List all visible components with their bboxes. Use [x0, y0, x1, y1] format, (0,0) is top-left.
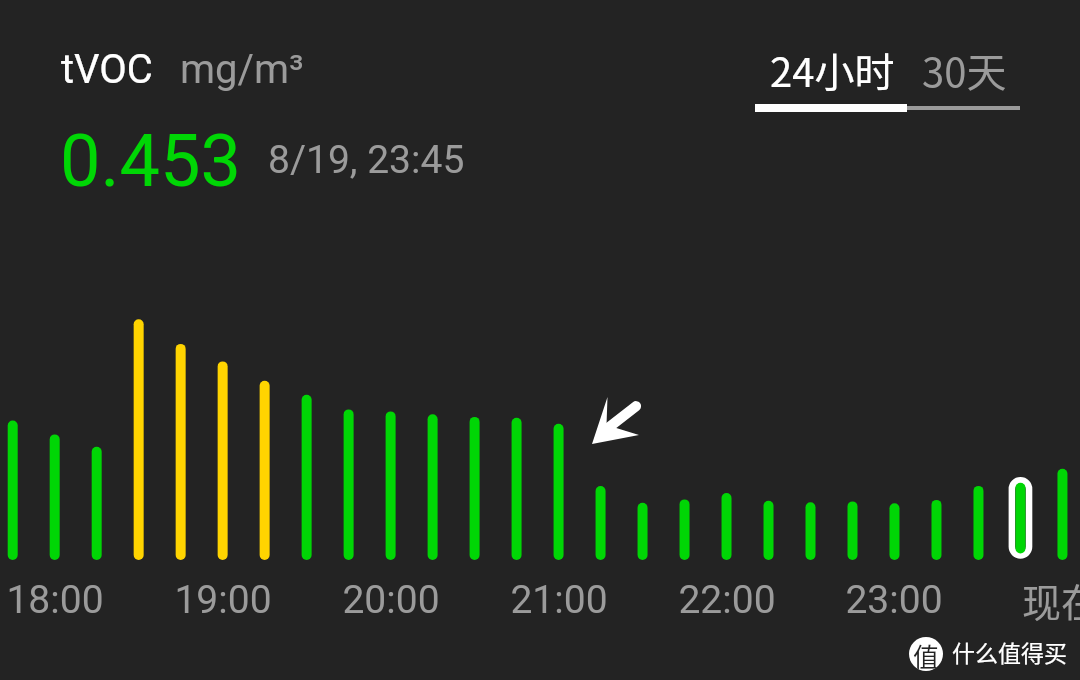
staticText: 22:00 — [678, 577, 776, 623]
staticText: 18:00 — [6, 577, 104, 623]
staticText: 21:00 — [510, 577, 608, 623]
staticText: 0.453 — [60, 119, 241, 203]
button[interactable]: Sample 13 — [496, 300, 538, 560]
button[interactable]: Sample 17 — [664, 300, 706, 560]
button[interactable]: 24小时 — [757, 41, 908, 99]
button[interactable]: Sample 12 — [454, 300, 496, 560]
staticText: 19:00 — [174, 577, 272, 623]
button[interactable]: Sample 15 — [580, 300, 622, 560]
button[interactable]: Sample 6 — [202, 300, 244, 560]
button[interactable]: Sample 2 — [34, 300, 76, 560]
staticText: 现在 — [1022, 572, 1080, 628]
staticText: 8/19, 23:45 — [268, 137, 465, 183]
staticText: tVOC — [61, 46, 153, 93]
button[interactable]: Sample 16 — [622, 300, 664, 560]
button[interactable]: Sample 24 — [957, 300, 999, 560]
button[interactable]: Sample 23 — [915, 300, 957, 560]
button[interactable]: Sample 19 — [748, 300, 790, 560]
staticText: 30天 — [922, 41, 1007, 99]
button[interactable]: Sample 21 — [832, 300, 874, 560]
staticText: 23:00 — [845, 577, 943, 623]
button[interactable]: Sample 8 — [286, 300, 328, 560]
button[interactable]: Sample 11 — [412, 300, 454, 560]
staticText: 20:00 — [342, 577, 440, 623]
staticText: 24小时 — [770, 41, 895, 99]
button[interactable]: Sample 1 — [0, 300, 34, 560]
button[interactable]: Sample 14 — [538, 300, 580, 560]
button[interactable]: Sample 7 — [244, 300, 286, 560]
button[interactable]: Sample 3 — [76, 300, 118, 560]
other: Annotation arrow — [588, 393, 644, 449]
staticText: mg/m³ — [180, 46, 304, 93]
button[interactable]: Sample 10 — [370, 300, 412, 560]
staticText: 值 — [913, 637, 940, 671]
button[interactable]: Sample 22 — [873, 300, 915, 560]
button[interactable]: Sample 9 — [328, 300, 370, 560]
button[interactable]: Sample 20 — [790, 300, 832, 560]
button[interactable]: Sample 5 — [160, 300, 202, 560]
staticText: 什么值得买 — [952, 635, 1067, 668]
button[interactable]: Sample 26 — [1041, 300, 1080, 560]
button[interactable]: Sample 4 — [118, 300, 160, 560]
button[interactable]: Sample 18 — [706, 300, 748, 560]
button[interactable]: Sample 25 — [999, 300, 1041, 560]
button[interactable]: 30天 — [908, 41, 1021, 99]
